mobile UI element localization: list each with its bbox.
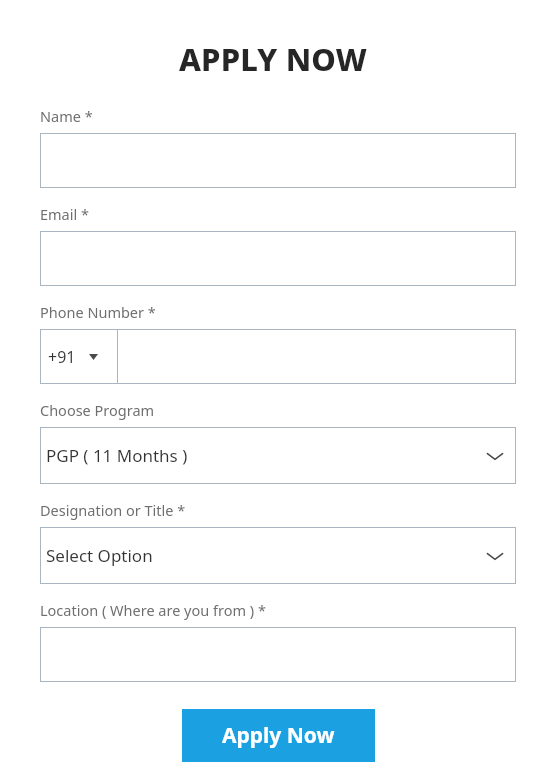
staticText: Location ( Where are you from ) * (40, 600, 266, 620)
staticText: Choose Program (40, 400, 155, 420)
staticText: Select Option (46, 544, 153, 567)
button[interactable] (40, 231, 516, 286)
button[interactable] (40, 133, 516, 188)
button[interactable] (118, 329, 516, 384)
staticText: Name * (40, 106, 93, 126)
button[interactable]: PGP ( 11 Months ) (40, 427, 516, 484)
staticText: Designation or Title * (40, 500, 186, 520)
button[interactable]: Apply Now (182, 709, 375, 762)
staticText: +91 (48, 346, 76, 368)
staticText: APPLY NOW (0, 38, 546, 80)
staticText: Phone Number * (40, 302, 156, 322)
staticText: Apply Now (222, 721, 335, 750)
button[interactable] (40, 627, 516, 682)
staticText: PGP ( 11 Months ) (46, 444, 188, 467)
button[interactable]: Select Option (40, 527, 516, 584)
staticText: Email * (40, 204, 89, 224)
button[interactable]: Country code +91 (40, 329, 117, 384)
